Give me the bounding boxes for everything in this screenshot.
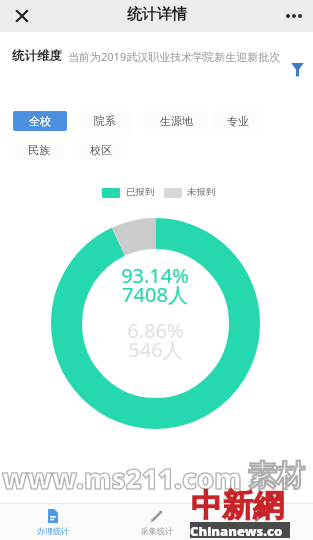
button[interactable]: 办理统计 [0, 505, 105, 539]
button[interactable]: Close [11, 5, 33, 27]
staticText: 民族 [28, 143, 50, 157]
staticText: www.ms211.com [2, 460, 242, 497]
staticText: 93.14% 7408人 [121, 262, 189, 308]
staticText: 当前为2019武汉职业技术学院新生迎新批次 [68, 49, 281, 64]
button[interactable]: More options [282, 4, 306, 28]
staticText: 生源地 [160, 114, 193, 128]
staticText: 6.86% 546人 [127, 317, 184, 363]
staticText: 专业 [227, 114, 249, 128]
staticText: 报到统计 [245, 526, 277, 536]
button[interactable]: 校区 [75, 140, 126, 160]
staticText: 已报到 [126, 186, 155, 198]
staticText: 未报到 [187, 186, 216, 198]
button[interactable]: Filter [291, 62, 304, 77]
staticText: 中新網 [191, 486, 284, 525]
staticText: 全校 [29, 114, 51, 128]
staticText: 素材 [248, 458, 304, 493]
staticText: Chinanews.com [190, 522, 290, 538]
button[interactable]: 采集统计 [105, 505, 209, 539]
button[interactable]: 生源地 [143, 111, 209, 131]
button[interactable]: 全校 [13, 111, 67, 131]
staticText: www.ms211.com [2, 460, 242, 497]
button[interactable]: 民族 [13, 140, 64, 160]
staticText: 办理统计 [37, 526, 69, 536]
staticText: 院系 [94, 114, 116, 128]
staticText: 校区 [90, 143, 112, 157]
staticText: 统计详情 [127, 5, 187, 24]
button[interactable]: 报到统计 [209, 505, 313, 539]
button[interactable]: 院系 [78, 111, 132, 131]
staticText: 采集统计 [141, 526, 173, 536]
button[interactable]: 专业 [212, 111, 263, 131]
staticText: 素材 [248, 458, 304, 493]
staticText: 统计维度 [12, 48, 62, 64]
